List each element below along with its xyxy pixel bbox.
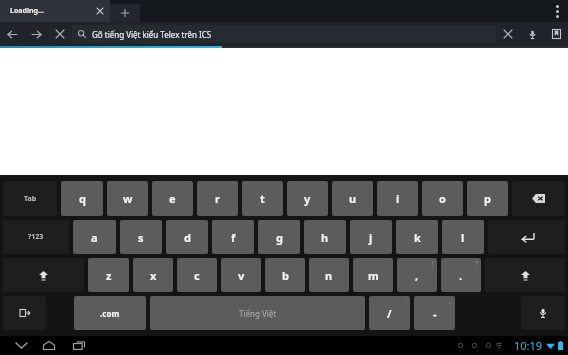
- button[interactable]: ,: [397, 258, 437, 292]
- button[interactable]: k: [396, 220, 438, 254]
- staticText: 10:19: [514, 338, 543, 353]
- button[interactable]: s: [120, 220, 162, 254]
- staticText: /: [387, 306, 392, 321]
- button[interactable]: Tab: [3, 181, 57, 216]
- button[interactable]: l: [442, 220, 484, 254]
- staticText: i: [396, 191, 400, 206]
- button[interactable]: w: [107, 181, 148, 216]
- button[interactable]: o: [422, 181, 463, 216]
- button[interactable]: j: [350, 220, 392, 254]
- button[interactable]: Shift: [485, 258, 565, 292]
- staticText: z: [106, 268, 112, 283]
- button[interactable]: q: [61, 181, 103, 216]
- button[interactable]: Back: [0, 22, 24, 46]
- staticText: u: [349, 191, 357, 206]
- button[interactable]: Bookmarks: [544, 22, 568, 46]
- button[interactable]: i: [377, 181, 418, 216]
- button[interactable]: Stop loading: [48, 22, 72, 46]
- button[interactable]: n: [309, 258, 349, 292]
- staticText: d: [184, 230, 191, 245]
- staticText: q: [79, 191, 86, 206]
- button[interactable]: Voice search: [520, 22, 544, 46]
- button[interactable]: New tab: [110, 4, 140, 22]
- button[interactable]: Recent apps: [64, 336, 94, 355]
- button[interactable]: u: [332, 181, 373, 216]
- button[interactable]: g: [258, 220, 300, 254]
- staticText: -: [433, 306, 437, 321]
- button[interactable]: Gõ tiếng Việt kiểu Telex trên ICS: [72, 25, 496, 43]
- staticText: !: [432, 259, 434, 267]
- staticText: ,: [415, 268, 419, 283]
- staticText: :: [405, 297, 407, 305]
- button[interactable]: b: [265, 258, 305, 292]
- staticText: b: [282, 268, 289, 283]
- button[interactable]: a: [73, 220, 116, 254]
- staticText: m: [368, 268, 379, 283]
- button[interactable]: .com: [74, 296, 146, 330]
- staticText: j: [369, 230, 373, 245]
- button[interactable]: r: [197, 181, 238, 216]
- staticText: Tiếng Việt: [239, 308, 277, 319]
- staticText: Tab: [24, 194, 37, 204]
- staticText: x: [150, 268, 157, 283]
- staticText: a: [91, 230, 98, 245]
- button[interactable]: Change input method: [3, 296, 46, 330]
- button[interactable]: -: [414, 296, 455, 330]
- staticText: e: [169, 191, 176, 206]
- button[interactable]: Home: [34, 336, 64, 355]
- staticText: c: [194, 268, 200, 283]
- staticText: g: [276, 230, 283, 245]
- staticText: .com: [100, 308, 120, 319]
- button[interactable]: Close tab: [93, 4, 107, 18]
- staticText: ?123: [28, 232, 44, 242]
- button[interactable]: x: [133, 258, 173, 292]
- button[interactable]: h: [304, 220, 346, 254]
- button[interactable]: p: [467, 181, 508, 216]
- button[interactable]: Forward: [24, 22, 48, 46]
- button[interactable]: .: [441, 258, 481, 292]
- button[interactable]: t: [242, 181, 283, 216]
- staticText: o: [439, 191, 446, 206]
- button[interactable]: Tiếng Việt: [150, 296, 365, 330]
- button[interactable]: ?123: [3, 220, 69, 254]
- staticText: f: [231, 230, 236, 245]
- button[interactable]: e: [152, 181, 193, 216]
- button[interactable]: Hide keyboard: [8, 336, 34, 355]
- staticText: s: [138, 230, 144, 245]
- staticText: ?: [475, 259, 478, 267]
- staticText: l: [461, 230, 465, 245]
- button[interactable]: Enter: [488, 220, 565, 254]
- staticText: Loading...: [10, 6, 93, 16]
- button[interactable]: c: [177, 258, 217, 292]
- staticText: t: [260, 191, 265, 206]
- button[interactable]: More options: [546, 0, 568, 22]
- button[interactable]: Voice input: [521, 296, 565, 330]
- staticText: n: [325, 268, 333, 283]
- staticText: _: [449, 297, 452, 305]
- button[interactable]: f: [212, 220, 254, 254]
- button[interactable]: Clear: [496, 22, 520, 46]
- staticText: p: [484, 191, 491, 206]
- staticText: w: [123, 191, 133, 206]
- button[interactable]: Backspace: [512, 181, 565, 216]
- button[interactable]: z: [88, 258, 129, 292]
- staticText: .: [459, 268, 463, 283]
- staticText: k: [414, 230, 421, 245]
- staticText: y: [304, 191, 311, 206]
- button[interactable]: y: [287, 181, 328, 216]
- button[interactable]: Shift: [3, 258, 84, 292]
- staticText: v: [238, 268, 245, 283]
- staticText: Gõ tiếng Việt kiểu Telex trên ICS: [92, 29, 212, 40]
- staticText: h: [321, 230, 329, 245]
- staticText: r: [215, 191, 220, 206]
- button[interactable]: Loading...: [0, 0, 110, 22]
- button[interactable]: d: [166, 220, 208, 254]
- button[interactable]: m: [353, 258, 393, 292]
- button[interactable]: v: [221, 258, 261, 292]
- button[interactable]: /: [369, 296, 410, 330]
